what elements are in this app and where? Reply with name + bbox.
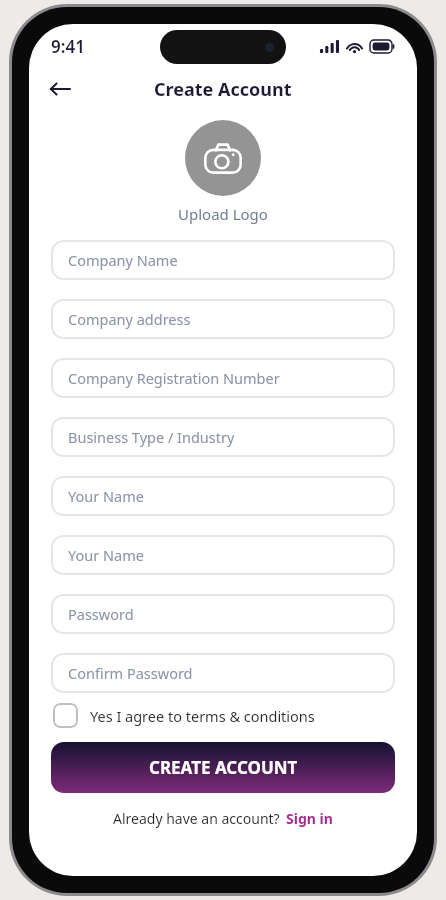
staticText: Confirm Password [68, 663, 193, 683]
staticText: Password [68, 604, 134, 624]
staticText: Your Name [68, 545, 144, 565]
staticText: Upload Logo [178, 204, 268, 224]
button[interactable]: Yes I agree to terms & conditions [53, 703, 393, 728]
staticText: Already have an account? [113, 809, 280, 828]
button[interactable]: Password [51, 594, 395, 634]
staticText: Your Name [68, 486, 144, 506]
button[interactable]: Your Name [51, 535, 395, 575]
button[interactable]: Business Type / Industry [51, 417, 395, 457]
staticText: Sign in [286, 809, 333, 828]
staticText: CREATE ACCOUNT [149, 756, 298, 779]
button[interactable]: Sign in [286, 809, 333, 828]
button[interactable]: Company Name [51, 240, 395, 280]
button[interactable]: Your Name [51, 476, 395, 516]
button[interactable]: CREATE ACCOUNT [51, 742, 395, 793]
staticText: Company Registration Number [68, 368, 280, 388]
staticText: Create Account [154, 77, 292, 102]
button[interactable]: Back [39, 69, 79, 109]
staticText: Yes I agree to terms & conditions [90, 706, 315, 726]
staticText: Company address [68, 309, 191, 329]
button[interactable]: Confirm Password [51, 653, 395, 693]
button[interactable]: Company address [51, 299, 395, 339]
staticText: 9:41 [51, 35, 85, 58]
staticText: Business Type / Industry [68, 427, 235, 447]
button[interactable]: Company Registration Number [51, 358, 395, 398]
staticText: Company Name [68, 250, 178, 270]
button[interactable]: Upload logo [185, 120, 261, 196]
